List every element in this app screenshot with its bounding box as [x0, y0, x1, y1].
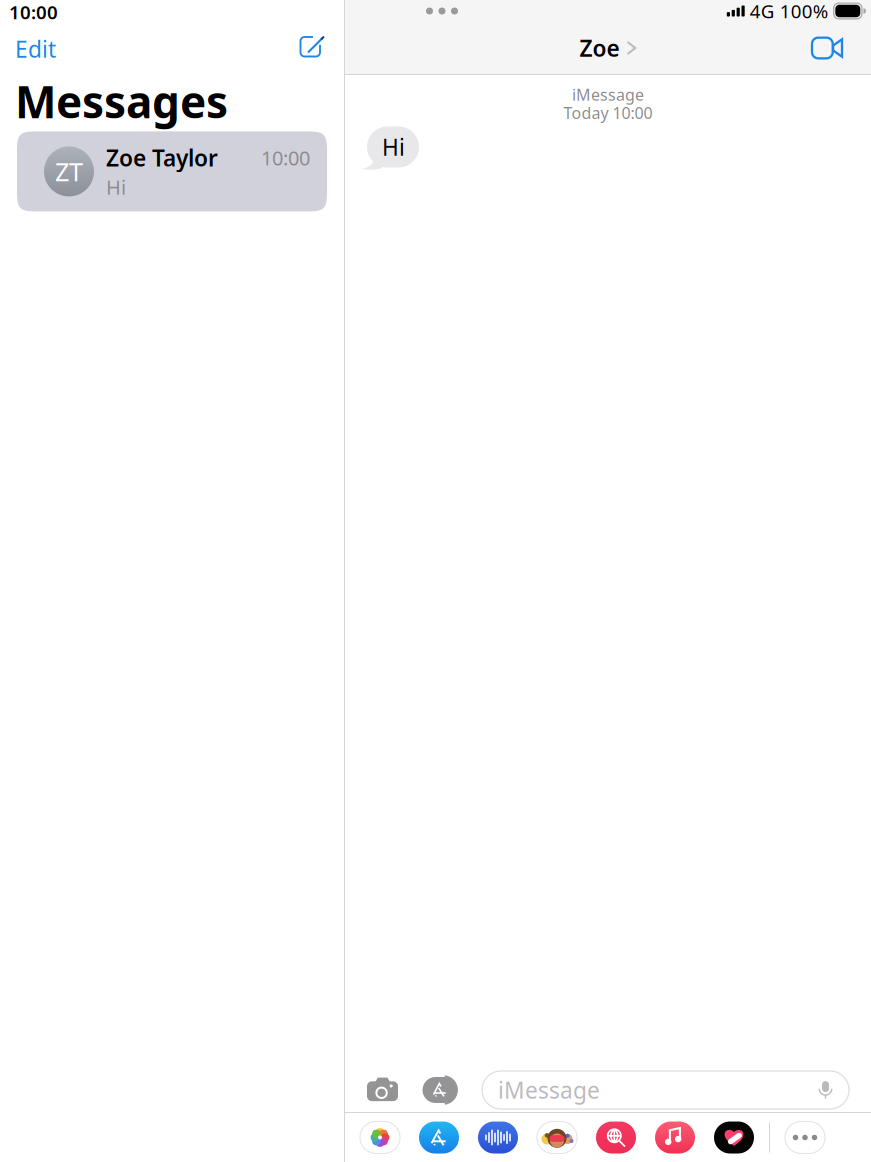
staticText: 10:00: [9, 0, 58, 24]
button[interactable]: Audio Messages: [478, 1121, 518, 1153]
staticText: Zoe Taylor: [106, 143, 218, 173]
staticText: Hi: [382, 132, 405, 162]
button[interactable]: ZT: [17, 131, 327, 211]
button[interactable]: Camera: [362, 1069, 403, 1110]
staticText: Today 10:00: [563, 102, 652, 123]
staticText: 100%: [780, 0, 829, 23]
button[interactable]: FaceTime: [804, 30, 850, 66]
button[interactable]: Apps: [418, 1070, 466, 1110]
button[interactable]: App Store: [419, 1121, 459, 1153]
button[interactable]: More Apps: [785, 1121, 825, 1153]
button[interactable]: iMessage: [482, 1071, 849, 1109]
button[interactable]: New Message: [290, 24, 333, 65]
staticText: 10:00: [261, 144, 310, 171]
button[interactable]: Photos: [360, 1121, 400, 1153]
button[interactable]: Image Search: [596, 1121, 636, 1153]
button[interactable]: Memoji: [537, 1121, 577, 1153]
staticText: ZT: [55, 155, 83, 188]
button[interactable]: Edit: [6, 22, 65, 68]
button[interactable]: Fitness: [714, 1121, 754, 1153]
staticText: iMessage: [572, 84, 644, 105]
staticText: Edit: [15, 34, 56, 64]
staticText: Messages: [15, 72, 228, 130]
staticText: 4G: [750, 0, 775, 23]
button[interactable]: Music: [655, 1121, 695, 1153]
staticText: Zoe: [580, 33, 620, 63]
staticText: Hi: [106, 174, 126, 200]
staticText: iMessage: [498, 1075, 600, 1105]
